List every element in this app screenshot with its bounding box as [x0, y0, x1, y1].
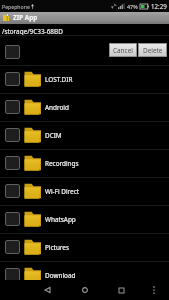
button[interactable]: Delete [138, 43, 167, 57]
button[interactable]: Recent apps [110, 280, 132, 300]
button[interactable]: Back [36, 280, 58, 300]
staticText: Recordings [45, 159, 79, 168]
button[interactable]: LOST.DIR [0, 65, 169, 93]
staticText: LOST.DIR [45, 75, 73, 84]
button[interactable]: Select all [5, 45, 20, 59]
staticText: Pictures [45, 243, 70, 252]
staticText: Wi-Fi Direct [45, 187, 80, 196]
button[interactable]: Download [0, 261, 169, 289]
button[interactable]: Cancel [109, 43, 137, 57]
staticText: Pepephone [2, 3, 30, 10]
staticText: ZIP App [13, 13, 38, 22]
button[interactable]: Home [74, 280, 96, 300]
staticText: 47% [127, 3, 138, 10]
button[interactable]: Wi-Fi Direct [0, 177, 169, 205]
button[interactable]: DCIM [0, 121, 169, 149]
staticText: WhatsApp [45, 215, 76, 224]
button[interactable]: WhatsApp [0, 205, 169, 233]
button[interactable]: Recordings [0, 149, 169, 177]
button[interactable]: More options [147, 283, 161, 297]
staticText: Android [45, 103, 69, 112]
staticText: /storage/9C33-68BD [2, 27, 63, 36]
staticText: DCIM [45, 131, 62, 140]
button[interactable]: Android [0, 93, 169, 121]
button[interactable]: Pictures [0, 233, 169, 261]
staticText: Download [45, 271, 76, 280]
staticText: 12:29 [151, 2, 167, 10]
staticText: Cancel [113, 46, 133, 55]
staticText: Delete [143, 46, 163, 55]
